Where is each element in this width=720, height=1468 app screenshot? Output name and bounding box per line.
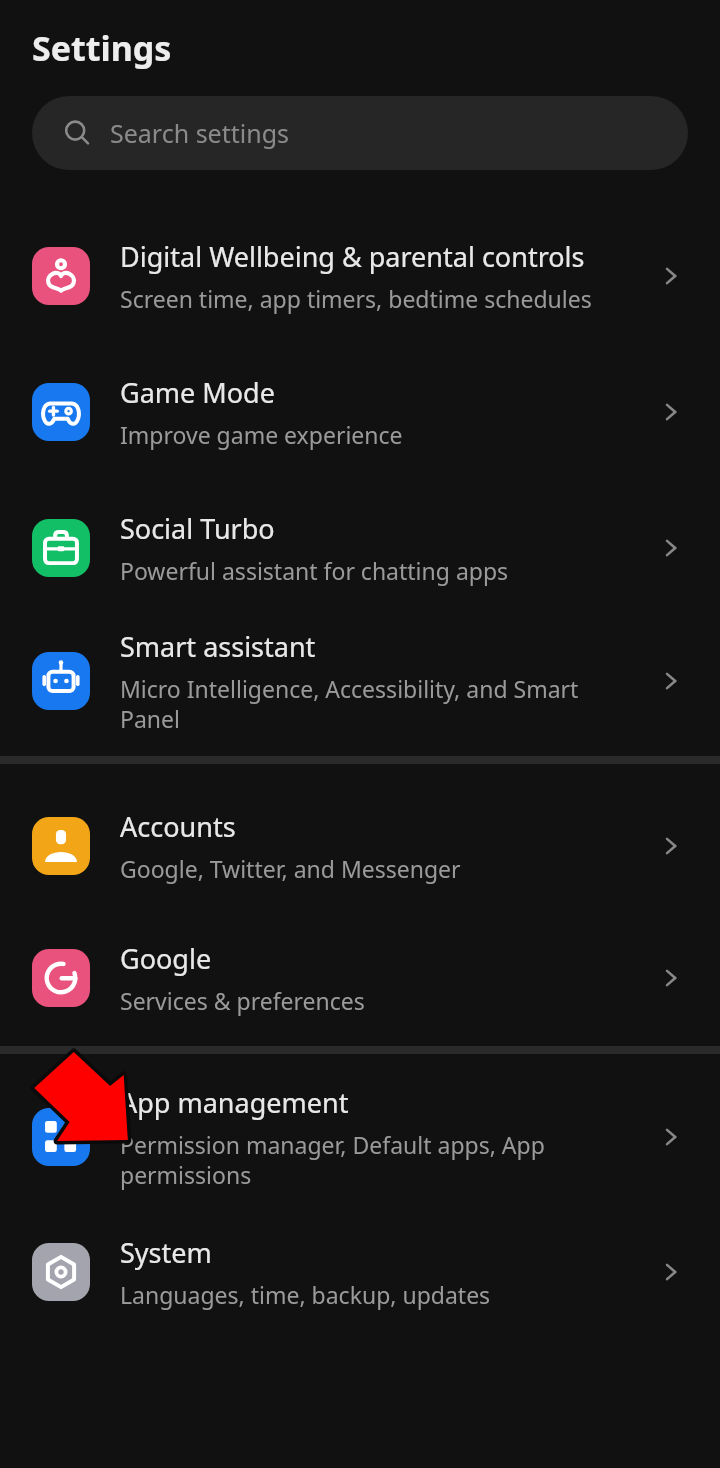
- staticText: Social Turbo: [120, 510, 275, 547]
- staticText: Search settings: [110, 116, 290, 150]
- staticText: Permission manager, Default apps, App pe…: [120, 1129, 560, 1190]
- button[interactable]: System: [0, 1208, 720, 1336]
- button[interactable]: Search settings: [32, 96, 688, 170]
- staticText: Improve game experience: [120, 419, 403, 450]
- button[interactable]: Google: [0, 914, 720, 1042]
- staticText: Smart assistant: [120, 628, 316, 665]
- staticText: Settings: [32, 25, 172, 71]
- button[interactable]: Game Mode: [0, 344, 720, 480]
- staticText: Powerful assistant for chatting apps: [120, 555, 509, 586]
- staticText: Services & preferences: [120, 985, 365, 1016]
- staticText: Screen time, app timers, bedtime schedul…: [120, 283, 592, 314]
- staticText: App management: [120, 1084, 349, 1121]
- staticText: System: [120, 1234, 212, 1271]
- staticText: Game Mode: [120, 374, 275, 411]
- button[interactable]: Accounts: [0, 778, 720, 914]
- staticText: Google: [120, 940, 212, 977]
- button[interactable]: Digital Wellbeing & parental controls: [0, 208, 720, 344]
- staticText: Digital Wellbeing & parental controls: [120, 238, 585, 275]
- button[interactable]: Smart assistant: [0, 616, 720, 746]
- button[interactable]: App management: [0, 1066, 720, 1208]
- staticText: Micro Intelligence, Accessibility, and S…: [120, 673, 600, 734]
- staticText: Google, Twitter, and Messenger: [120, 853, 461, 884]
- staticText: Languages, time, backup, updates: [120, 1279, 491, 1310]
- button[interactable]: Social Turbo: [0, 480, 720, 616]
- staticText: Accounts: [120, 808, 236, 845]
